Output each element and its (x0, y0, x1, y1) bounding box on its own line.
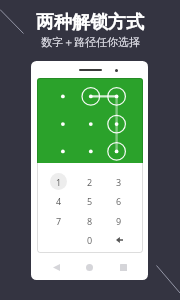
staticText: 1 (56, 176, 62, 188)
staticText: 数字＋路径任你选择 (41, 35, 140, 49)
staticText: 9 (116, 215, 122, 227)
button[interactable]: 3 (106, 172, 132, 192)
staticText: 2 (87, 176, 93, 188)
staticText: 5 (87, 195, 93, 207)
button[interactable]: 9 (106, 211, 132, 231)
staticText: 4 (56, 195, 62, 207)
button[interactable]: Recents (111, 257, 136, 277)
button[interactable]: 2 (77, 172, 103, 192)
button[interactable]: Home (77, 257, 102, 277)
button[interactable]: 4 (46, 191, 72, 211)
button[interactable]: 5 (77, 191, 103, 211)
button[interactable]: 0 (77, 230, 103, 250)
button[interactable]: 6 (106, 191, 132, 211)
staticText: 6 (116, 195, 122, 207)
staticText: 0 (87, 234, 93, 246)
staticText: 两种解锁方式 (36, 11, 144, 34)
button[interactable]: 8 (77, 211, 103, 231)
staticText: 8 (87, 215, 93, 227)
button[interactable]: 1 (46, 172, 72, 192)
button[interactable]: Back (44, 257, 69, 277)
button[interactable] (106, 230, 132, 250)
button[interactable]: 7 (46, 211, 72, 231)
staticText: 7 (56, 215, 62, 227)
staticText: 3 (116, 176, 122, 188)
